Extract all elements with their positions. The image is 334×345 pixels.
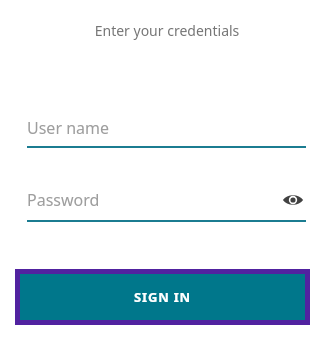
staticText: Enter your credentials <box>0 21 334 40</box>
staticText: SIGN IN <box>134 288 191 306</box>
button[interactable]: User name <box>27 117 306 148</box>
button[interactable]: SIGN IN <box>20 274 305 320</box>
button[interactable]: Password <box>27 187 306 222</box>
button[interactable]: Show password <box>280 187 306 213</box>
staticText: User name <box>27 117 306 139</box>
staticText: Password <box>27 189 280 211</box>
